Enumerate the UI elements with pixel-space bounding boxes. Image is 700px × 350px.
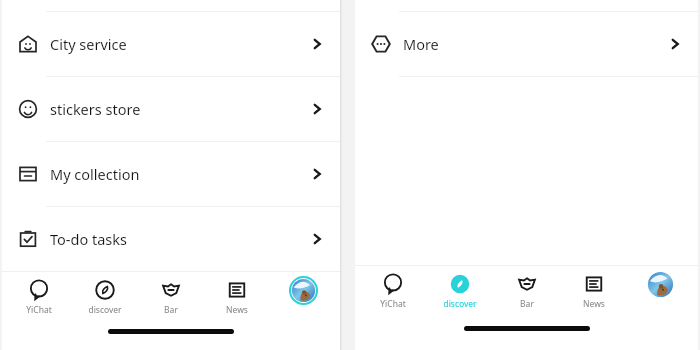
staticText: Bar (520, 298, 534, 310)
staticText: News (226, 304, 248, 316)
button[interactable]: News (560, 266, 627, 316)
staticText: City service (50, 34, 127, 54)
button[interactable]: discover (72, 272, 138, 322)
button[interactable]: YiChat (359, 266, 426, 316)
button[interactable]: YiChat (6, 272, 72, 322)
staticText: Bar (164, 304, 178, 316)
staticText: More (403, 34, 439, 54)
button[interactable]: News (204, 272, 270, 322)
button[interactable]: City service (2, 12, 340, 76)
staticText: discover (88, 304, 122, 316)
button[interactable]: Bar (138, 272, 204, 322)
button[interactable]: Profile (627, 266, 694, 316)
staticText: My collection (50, 164, 140, 184)
staticText: News (583, 298, 605, 310)
button[interactable]: My collection (2, 142, 340, 206)
staticText: YiChat (380, 298, 406, 310)
button[interactable]: stickers store (2, 77, 340, 141)
staticText: To-do tasks (50, 229, 127, 249)
button[interactable]: Bar (493, 266, 560, 316)
button[interactable]: To-do tasks (2, 207, 340, 271)
button[interactable]: discover (426, 266, 493, 316)
button[interactable]: More (355, 12, 698, 76)
staticText: stickers store (50, 99, 141, 119)
staticText: YiChat (26, 304, 52, 316)
staticText: discover (443, 298, 477, 310)
button[interactable]: Profile (270, 272, 336, 322)
